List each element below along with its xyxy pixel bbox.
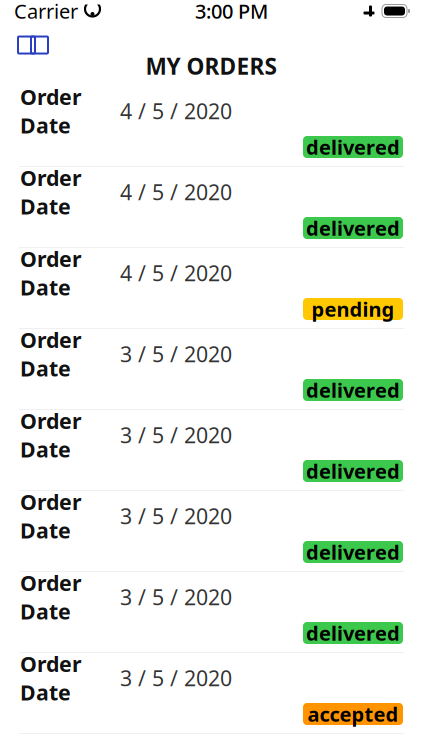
- staticText: delivered: [306, 458, 400, 484]
- button[interactable]: Order Date: [0, 576, 422, 657]
- staticText: accepted: [307, 701, 398, 727]
- staticText: Order Date: [20, 83, 82, 139]
- staticText: 3 / 5 / 2020: [120, 502, 232, 530]
- staticText: delivered: [306, 539, 400, 565]
- staticText: delivered: [306, 620, 400, 646]
- button[interactable]: Order Date: [0, 171, 422, 252]
- button[interactable]: Back: [6, 23, 60, 67]
- staticText: Order Date: [20, 569, 82, 625]
- staticText: 4 / 5 / 2020: [120, 259, 232, 287]
- staticText: Carrier: [14, 0, 78, 24]
- button[interactable]: Order Date: [0, 90, 422, 171]
- staticText: delivered: [306, 377, 400, 403]
- staticText: 3 / 5 / 2020: [120, 340, 232, 368]
- staticText: Order Date: [20, 650, 82, 706]
- staticText: delivered: [306, 215, 400, 241]
- staticText: 3 / 5 / 2020: [120, 583, 232, 611]
- staticText: MY ORDERS: [145, 51, 276, 81]
- button[interactable]: Order Date: [0, 657, 422, 738]
- staticText: Order Date: [20, 245, 82, 301]
- staticText: 3 / 5 / 2020: [120, 664, 232, 692]
- staticText: delivered: [306, 134, 400, 160]
- staticText: Order Date: [20, 164, 82, 220]
- staticText: 3 / 5 / 2020: [120, 421, 232, 449]
- button[interactable]: Order Date: [0, 333, 422, 414]
- staticText: 4 / 5 / 2020: [120, 178, 232, 206]
- button[interactable]: Order Date: [0, 414, 422, 495]
- staticText: pending: [311, 296, 394, 322]
- button[interactable]: Order Date: [0, 495, 422, 576]
- staticText: Order Date: [20, 488, 82, 544]
- staticText: 3:00 PM: [195, 0, 268, 24]
- button[interactable]: Order Date: [0, 252, 422, 333]
- staticText: Order Date: [20, 326, 82, 382]
- staticText: Order Date: [20, 407, 82, 463]
- staticText: 4 / 5 / 2020: [120, 97, 232, 125]
